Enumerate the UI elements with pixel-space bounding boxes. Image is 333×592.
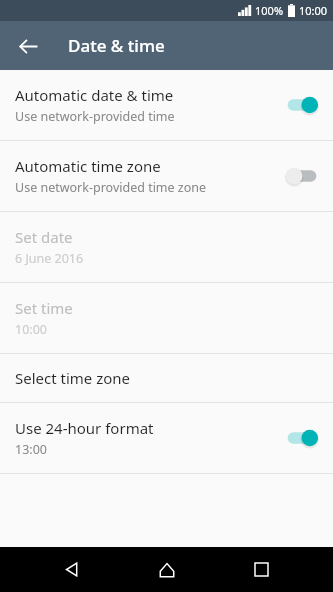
button[interactable]: Back bbox=[49, 547, 95, 592]
staticText: Use 24-hour format bbox=[15, 418, 154, 438]
staticText: 13:00 bbox=[15, 441, 47, 458]
button[interactable]: Toggle on bbox=[284, 93, 320, 117]
staticText: 6 June 2016 bbox=[15, 250, 84, 267]
staticText: Date & time bbox=[68, 34, 165, 57]
staticText: Set date bbox=[15, 227, 73, 247]
button[interactable]: Back bbox=[9, 27, 47, 65]
staticText: Use network-provided time zone bbox=[15, 179, 207, 196]
button[interactable]: Select time zone bbox=[0, 354, 333, 402]
staticText: Set time bbox=[15, 298, 73, 318]
button[interactable]: Set date bbox=[0, 212, 333, 282]
button[interactable]: Use 24-hour format bbox=[0, 403, 333, 473]
button[interactable]: Home bbox=[144, 547, 190, 592]
button[interactable]: Recents bbox=[238, 547, 284, 592]
button[interactable]: Set time bbox=[0, 283, 333, 353]
staticText: Use network-provided time bbox=[15, 108, 175, 125]
button[interactable]: Toggle on bbox=[284, 426, 320, 450]
staticText: Automatic date & time bbox=[15, 85, 174, 105]
staticText: 10:00 bbox=[15, 321, 47, 338]
button[interactable]: Automatic date & time bbox=[0, 70, 333, 140]
staticText: 100% bbox=[255, 3, 284, 18]
button[interactable]: Automatic time zone bbox=[0, 141, 333, 211]
staticText: Select time zone bbox=[15, 368, 131, 388]
button[interactable]: Toggle off bbox=[284, 164, 320, 188]
staticText: Automatic time zone bbox=[15, 156, 161, 176]
staticText: 10:00 bbox=[299, 3, 328, 18]
